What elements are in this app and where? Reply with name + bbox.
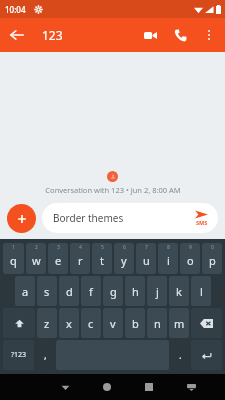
button[interactable]: 123	[42, 27, 63, 43]
button[interactable]: Enter	[191, 340, 222, 370]
staticText: ,	[44, 348, 47, 362]
staticText: Conversation with 123 • Jun 2, 8:00 AM	[45, 185, 181, 195]
staticText: 10:04	[5, 4, 26, 15]
staticText: m	[174, 316, 185, 331]
staticText: s	[44, 284, 50, 299]
button[interactable]: Send SMS	[186, 203, 216, 233]
staticText: b	[132, 316, 139, 331]
button[interactable]: Backspace	[191, 308, 222, 338]
staticText: r	[78, 253, 83, 268]
staticText: x	[66, 316, 72, 331]
button[interactable]: Back	[45, 374, 86, 400]
staticText: i	[167, 253, 170, 268]
staticText: f	[89, 284, 93, 299]
staticText: n	[154, 316, 161, 331]
button[interactable]: Border themes	[42, 203, 218, 233]
staticText: 1	[12, 244, 15, 251]
button[interactable]: m	[169, 308, 189, 338]
button[interactable]: f	[81, 276, 101, 306]
staticText: v	[110, 316, 116, 331]
button[interactable]: n	[147, 308, 167, 338]
staticText: 8	[167, 244, 170, 251]
button[interactable]: g	[103, 276, 123, 306]
button[interactable]: Video call	[135, 20, 165, 50]
button[interactable]: 5	[92, 243, 112, 274]
button[interactable]: d	[59, 276, 79, 306]
button[interactable]: 4	[70, 243, 90, 274]
button[interactable]: j	[147, 276, 167, 306]
button[interactable]: 8	[158, 243, 178, 274]
staticText: p	[209, 253, 216, 268]
staticText: 9	[189, 244, 192, 251]
button[interactable]: ,	[36, 340, 54, 370]
staticText: ?123	[11, 350, 27, 360]
button[interactable]: Back	[0, 18, 34, 52]
staticText: 0	[211, 244, 214, 251]
button[interactable]: 3	[48, 243, 68, 274]
button[interactable]: .	[171, 340, 189, 370]
button[interactable]: 6	[114, 243, 134, 274]
staticText: g	[110, 284, 117, 299]
button[interactable]: Shift	[3, 308, 35, 338]
button[interactable]: 9	[180, 243, 200, 274]
staticText: z	[44, 316, 50, 331]
button[interactable]: Home	[86, 374, 128, 400]
staticText: 4	[79, 244, 82, 251]
button[interactable]: h	[125, 276, 145, 306]
button[interactable]: a	[15, 276, 35, 306]
button[interactable]: x	[59, 308, 79, 338]
staticText: l	[200, 284, 203, 299]
staticText: 7	[145, 244, 148, 251]
staticText: j	[156, 284, 159, 299]
button[interactable]: ?123	[3, 340, 34, 370]
button[interactable]: 0	[202, 243, 222, 274]
button[interactable]: b	[125, 308, 145, 338]
staticText: c	[88, 316, 94, 331]
staticText: d	[66, 284, 73, 299]
staticText: w	[32, 253, 41, 268]
staticText: u	[143, 253, 150, 268]
staticText: .	[179, 348, 182, 362]
button[interactable]: Call	[165, 20, 195, 50]
button[interactable]: l	[191, 276, 211, 306]
button[interactable]: k	[169, 276, 189, 306]
button[interactable]: v	[103, 308, 123, 338]
button[interactable]: 1	[3, 243, 24, 274]
button[interactable]: Attach	[7, 204, 36, 233]
staticText: SMS	[196, 219, 208, 226]
button[interactable]: s	[37, 276, 57, 306]
staticText: e	[55, 253, 62, 268]
staticText: 2	[35, 244, 38, 251]
button[interactable]: 7	[136, 243, 156, 274]
button[interactable]: z	[37, 308, 57, 338]
staticText: 3	[57, 244, 60, 251]
staticText: a	[22, 284, 29, 299]
staticText: o	[187, 253, 194, 268]
button[interactable]: 2	[26, 243, 46, 274]
staticText: q	[10, 253, 17, 268]
button[interactable]: c	[81, 308, 101, 338]
staticText: Border themes	[53, 211, 186, 225]
staticText: 5	[101, 244, 104, 251]
button[interactable]: Hide keyboard	[170, 374, 212, 400]
button[interactable]: More options	[195, 21, 223, 49]
staticText: h	[132, 284, 139, 299]
button[interactable]: Recents	[128, 374, 170, 400]
staticText: y	[121, 253, 127, 268]
staticText: t	[100, 253, 104, 268]
staticText: k	[176, 284, 182, 299]
staticText: 6	[123, 244, 126, 251]
